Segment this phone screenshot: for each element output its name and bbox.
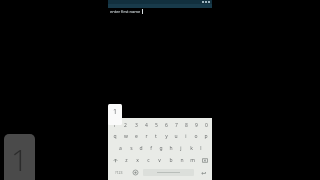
button[interactable]: p xyxy=(201,131,211,142)
staticText: 9 xyxy=(195,122,198,129)
staticText: 1 xyxy=(113,107,118,117)
button[interactable]: y xyxy=(161,131,171,142)
button[interactable]: d xyxy=(136,143,146,154)
button[interactable]: z xyxy=(121,155,132,166)
button[interactable]: a xyxy=(115,143,126,154)
staticText: 1 xyxy=(11,139,29,180)
button[interactable]: c xyxy=(143,155,154,166)
button[interactable]: Space xyxy=(143,169,194,176)
staticText: e xyxy=(135,133,138,140)
button[interactable]: Emoji xyxy=(128,167,142,178)
button[interactable]: b xyxy=(165,155,176,166)
button[interactable]: h xyxy=(166,143,176,154)
button[interactable]: enter first name xyxy=(108,8,212,14)
button[interactable]: Recording indicator xyxy=(4,134,35,180)
staticText: 3 xyxy=(135,122,138,129)
staticText: b xyxy=(169,157,173,164)
staticText: j xyxy=(180,145,182,152)
button[interactable]: i xyxy=(181,131,191,142)
button[interactable]: e xyxy=(131,131,141,142)
staticText: s xyxy=(130,145,133,152)
button[interactable]: t xyxy=(151,131,161,142)
staticText: 5 xyxy=(155,122,158,129)
staticText: w xyxy=(124,133,128,140)
button[interactable]: m xyxy=(187,155,198,166)
button[interactable]: 2 xyxy=(120,120,131,130)
staticText: v xyxy=(158,157,161,164)
button[interactable]: 8 xyxy=(181,120,191,130)
staticText: a xyxy=(119,145,122,152)
staticText: t xyxy=(155,133,157,140)
staticText: 2 xyxy=(124,122,127,129)
staticText: m xyxy=(190,157,195,164)
button[interactable]: s xyxy=(126,143,136,154)
button[interactable]: w xyxy=(120,131,131,142)
button[interactable]: k xyxy=(186,143,196,154)
staticText: c xyxy=(147,157,150,164)
button[interactable]: 1 xyxy=(108,104,122,125)
button[interactable]: ?123 xyxy=(109,167,128,178)
button[interactable]: Enter xyxy=(195,167,211,178)
staticText: 4 xyxy=(145,122,148,129)
staticText: g xyxy=(159,145,163,152)
staticText: 6 xyxy=(165,122,168,129)
staticText: 1 xyxy=(113,122,116,129)
button[interactable]: 0 xyxy=(201,120,211,130)
button[interactable]: 6 xyxy=(161,120,171,130)
staticText: h xyxy=(169,145,173,152)
staticText: q xyxy=(113,133,117,140)
button[interactable]: 1 xyxy=(109,120,120,130)
staticText: 0 xyxy=(205,122,208,129)
staticText: d xyxy=(139,145,143,152)
staticText: p xyxy=(204,133,208,140)
staticText: n xyxy=(180,157,184,164)
staticText: r xyxy=(145,133,148,140)
button[interactable]: 7 xyxy=(171,120,181,130)
button[interactable]: q xyxy=(109,131,120,142)
button[interactable]: 5 xyxy=(151,120,161,130)
button[interactable]: f xyxy=(146,143,156,154)
staticText: enter first name xyxy=(110,9,141,14)
staticText: u xyxy=(174,133,178,140)
staticText: l xyxy=(200,145,202,152)
staticText: 7 xyxy=(175,122,178,129)
button[interactable]: v xyxy=(154,155,165,166)
button[interactable]: Backspace xyxy=(198,155,211,166)
button[interactable]: o xyxy=(191,131,201,142)
staticText: f xyxy=(150,145,152,152)
staticText: x xyxy=(136,157,139,164)
staticText: k xyxy=(190,145,193,152)
button[interactable]: Shift xyxy=(109,155,121,166)
staticText: ?123 xyxy=(115,170,123,175)
button[interactable]: 9 xyxy=(191,120,201,130)
button[interactable]: 3 xyxy=(131,120,141,130)
staticText: y xyxy=(165,133,168,140)
staticText: z xyxy=(125,157,128,164)
button[interactable]: x xyxy=(132,155,143,166)
button[interactable]: r xyxy=(141,131,151,142)
staticText: 8 xyxy=(185,122,188,129)
staticText: i xyxy=(185,133,187,140)
button[interactable]: n xyxy=(176,155,187,166)
button[interactable]: g xyxy=(156,143,166,154)
button[interactable]: j xyxy=(176,143,186,154)
button[interactable]: u xyxy=(171,131,181,142)
staticText: o xyxy=(194,133,198,140)
button[interactable]: 4 xyxy=(141,120,151,130)
button[interactable]: l xyxy=(196,143,206,154)
